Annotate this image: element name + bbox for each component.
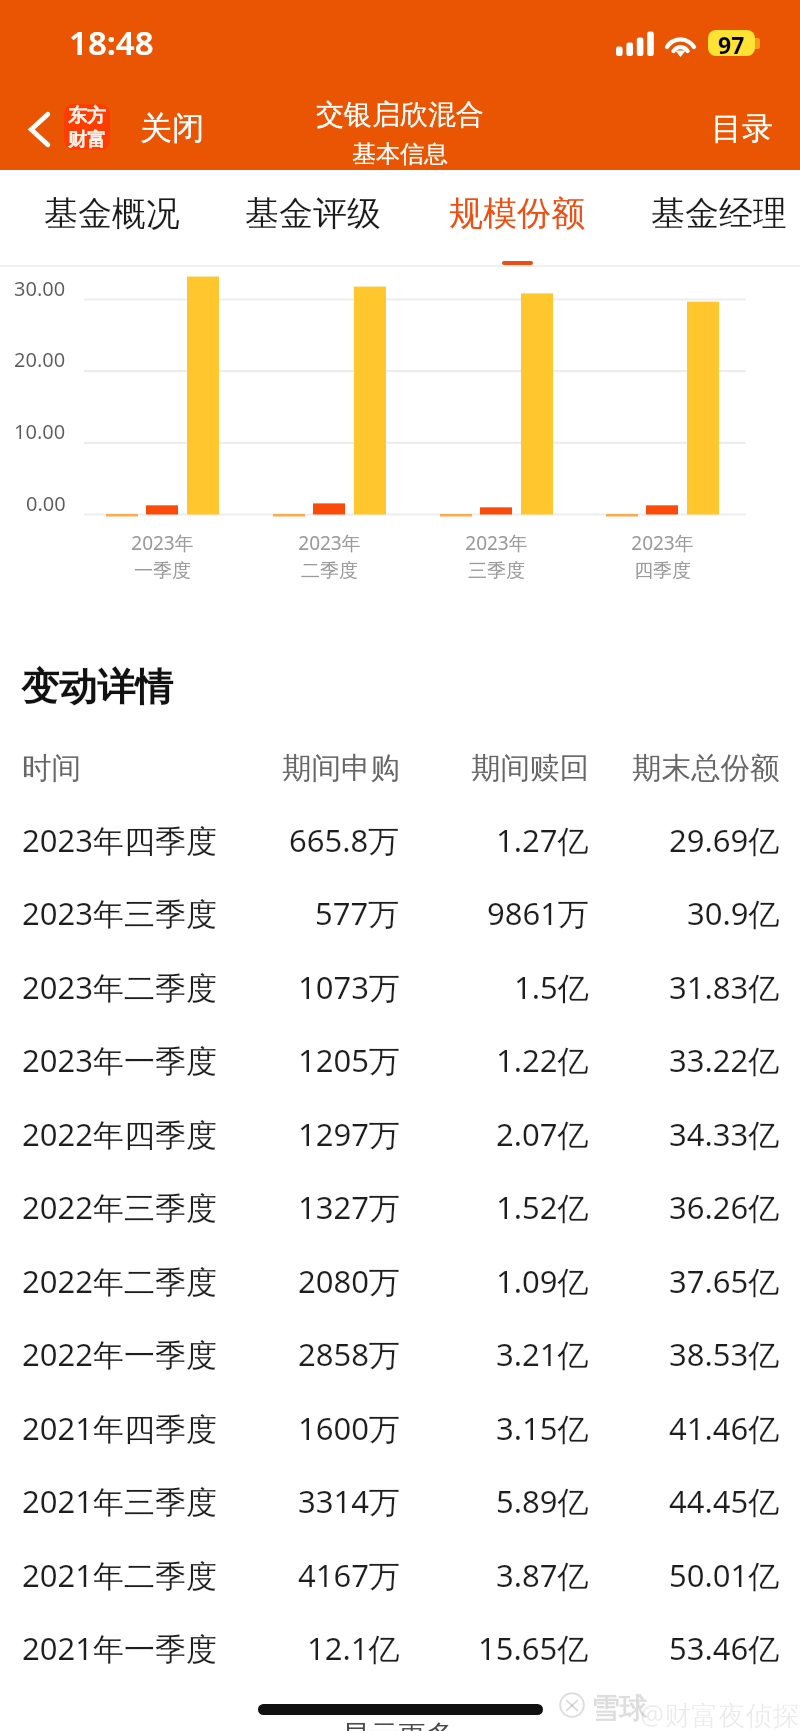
- button[interactable]: 2023年一季度: [0, 1025, 800, 1099]
- staticText: 交银启欣混合: [316, 97, 484, 132]
- staticText: 2023年 一季度: [131, 530, 194, 582]
- staticText: 关闭: [140, 108, 204, 148]
- button[interactable]: 2022年一季度: [0, 1319, 800, 1393]
- staticText: 41.46亿: [669, 1407, 780, 1449]
- staticText: 2022年四季度: [22, 1113, 217, 1155]
- staticText: 1327万: [298, 1186, 400, 1228]
- staticText: 29.69亿: [669, 819, 780, 861]
- button[interactable]: 2023年四季度: [0, 805, 800, 878]
- staticText: 20.00: [14, 346, 66, 373]
- staticText: 2022年一季度: [22, 1333, 217, 1375]
- staticText: 1.5亿: [514, 966, 589, 1008]
- staticText: 1205万: [298, 1039, 400, 1081]
- staticText: 665.8万: [289, 819, 400, 861]
- staticText: 37.65亿: [669, 1260, 780, 1302]
- button[interactable]: 规模份额: [417, 170, 617, 267]
- staticText: 基金评级: [245, 192, 381, 235]
- staticText: 规模份额: [449, 192, 585, 235]
- staticText: 基本信息: [352, 139, 448, 169]
- staticText: 2022年二季度: [22, 1260, 217, 1302]
- button[interactable]: 2021年一季度: [0, 1613, 800, 1687]
- staticText: 577万: [315, 892, 400, 934]
- staticText: 30.9亿: [687, 892, 780, 934]
- staticText: 3314万: [298, 1480, 400, 1522]
- staticText: 基金经理: [651, 192, 787, 235]
- staticText: 1.52亿: [496, 1186, 589, 1228]
- staticText: 1.27亿: [496, 819, 589, 861]
- button[interactable]: 2022年三季度: [0, 1172, 800, 1246]
- button[interactable]: 2023年二季度: [0, 952, 800, 1025]
- staticText: 2021年二季度: [22, 1554, 217, 1596]
- staticText: 2023年 二季度: [298, 530, 361, 582]
- staticText: 36.26亿: [669, 1186, 780, 1228]
- button[interactable]: 2021年四季度: [0, 1393, 800, 1466]
- staticText: 期末总份额: [632, 750, 780, 787]
- staticText: 2080万: [298, 1260, 400, 1302]
- staticText: 50.01亿: [669, 1554, 780, 1596]
- staticText: 3.21亿: [496, 1333, 589, 1375]
- staticText: 显示更多: [342, 1718, 454, 1731]
- staticText: 1073万: [298, 966, 400, 1008]
- button[interactable]: 时间: [0, 732, 800, 805]
- staticText: 97: [718, 30, 745, 55]
- staticText: 基金概况: [44, 192, 180, 235]
- staticText: 10.00: [14, 418, 66, 445]
- staticText: 3.15亿: [496, 1407, 589, 1449]
- staticText: 2022年三季度: [22, 1186, 217, 1228]
- button[interactable]: 2023年三季度: [0, 878, 800, 952]
- staticText: 东方: [68, 104, 106, 128]
- button[interactable]: 东方财富: [64, 104, 110, 150]
- staticText: 2021年一季度: [22, 1627, 217, 1669]
- staticText: 2023年一季度: [22, 1039, 217, 1081]
- staticText: 5.89亿: [496, 1480, 589, 1522]
- button[interactable]: 2022年二季度: [0, 1246, 800, 1319]
- staticText: 2.07亿: [496, 1113, 589, 1155]
- button[interactable]: 基金经理: [619, 170, 800, 267]
- staticText: 雪球: [591, 1691, 647, 1726]
- staticText: 1297万: [298, 1113, 400, 1155]
- staticText: 2021年三季度: [22, 1480, 217, 1522]
- staticText: 18:48: [69, 20, 154, 65]
- staticText: 30.00: [14, 275, 66, 302]
- staticText: 2858万: [298, 1333, 400, 1375]
- staticText: 31.83亿: [669, 966, 780, 1008]
- staticText: 2023年三季度: [22, 892, 217, 934]
- staticText: 财富: [68, 128, 106, 150]
- staticText: 2023年四季度: [22, 819, 217, 861]
- staticText: 2021年四季度: [22, 1407, 217, 1449]
- button[interactable]: 关闭: [140, 108, 204, 148]
- staticText: 时间: [22, 750, 81, 787]
- staticText: 2023年 三季度: [465, 530, 528, 582]
- button[interactable]: 目录: [711, 109, 773, 148]
- button[interactable]: 2022年四季度: [0, 1099, 800, 1172]
- staticText: 期间赎回: [471, 750, 589, 787]
- staticText: 目录: [711, 109, 773, 148]
- staticText: @财富夜侦探007: [640, 1696, 800, 1731]
- button[interactable]: 2021年三季度: [0, 1466, 800, 1540]
- staticText: 12.1亿: [307, 1627, 400, 1669]
- staticText: 1600万: [298, 1407, 400, 1449]
- staticText: 2023年 四季度: [631, 530, 694, 582]
- staticText: 38.53亿: [669, 1333, 780, 1375]
- staticText: 变动详情: [21, 663, 173, 711]
- staticText: 1.22亿: [496, 1039, 589, 1081]
- staticText: 1.09亿: [496, 1260, 589, 1302]
- staticText: 0.00: [26, 490, 66, 517]
- button[interactable]: 基金评级: [213, 170, 413, 267]
- staticText: 3.87亿: [496, 1554, 589, 1596]
- staticText: 53.46亿: [669, 1627, 780, 1669]
- staticText: 9861万: [487, 892, 589, 934]
- staticText: 4167万: [298, 1554, 400, 1596]
- button[interactable]: 基金概况: [12, 170, 212, 267]
- staticText: 44.45亿: [669, 1480, 780, 1522]
- staticText: 33.22亿: [669, 1039, 780, 1081]
- staticText: 15.65亿: [478, 1627, 589, 1669]
- staticText: 2023年二季度: [22, 966, 217, 1008]
- staticText: 34.33亿: [669, 1113, 780, 1155]
- staticText: 期间申购: [282, 750, 400, 787]
- button[interactable]: 2021年二季度: [0, 1540, 800, 1613]
- button[interactable]: Back: [8, 89, 70, 169]
